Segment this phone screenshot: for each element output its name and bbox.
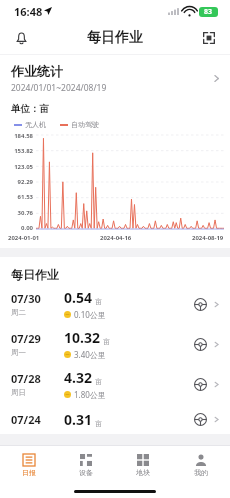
staticText: 0.31 xyxy=(64,410,92,429)
staticText: 10.32 xyxy=(64,328,100,347)
staticText: 地块 xyxy=(136,468,150,477)
staticText: 每日作业 xyxy=(11,267,59,282)
button[interactable]: 我的 xyxy=(172,446,230,484)
staticText: 亩 xyxy=(95,377,102,386)
button[interactable]: Auto driving xyxy=(193,337,208,352)
staticText: 作业统计 xyxy=(11,63,63,79)
staticText: 日报 xyxy=(22,468,36,477)
button[interactable]: Notifications xyxy=(8,25,34,51)
staticText: 周二 xyxy=(11,308,26,317)
staticText: 30.76 xyxy=(0,209,33,217)
staticText: 123.05 xyxy=(0,163,33,171)
staticText: 0.00 xyxy=(0,224,33,232)
staticText: 4.32 xyxy=(64,368,92,387)
staticText: 83 xyxy=(204,7,213,17)
staticText: 07/28 xyxy=(11,371,41,386)
button[interactable]: Auto driving xyxy=(193,412,208,427)
button[interactable]: 作业统计 xyxy=(0,55,230,98)
staticText: 0.54 xyxy=(64,288,92,307)
staticText: 16:48 xyxy=(14,4,43,19)
staticText: 我的 xyxy=(194,468,208,477)
staticText: 亩 xyxy=(103,337,110,346)
button[interactable]: Scan xyxy=(196,25,222,51)
staticText: 单位：亩 xyxy=(11,103,49,115)
staticText: 周一 xyxy=(11,348,26,357)
staticText: 2024-01-01 xyxy=(8,234,40,242)
button[interactable]: Auto driving xyxy=(193,297,208,312)
staticText: 自动驾驶 xyxy=(71,120,99,129)
button[interactable]: 07/28 xyxy=(0,364,230,404)
button[interactable]: 07/29 xyxy=(0,324,230,364)
staticText: 92.29 xyxy=(0,178,33,186)
staticText: 07/24 xyxy=(11,412,41,427)
button[interactable]: Auto driving xyxy=(193,377,208,392)
button[interactable]: 日报 xyxy=(0,446,57,484)
staticText: 153.82 xyxy=(0,147,33,155)
staticText: 61.53 xyxy=(0,193,33,201)
button[interactable]: 设备 xyxy=(57,446,114,484)
staticText: 无人机 xyxy=(25,120,46,129)
button[interactable]: 地块 xyxy=(114,446,172,484)
staticText: 每日作业 xyxy=(87,29,143,47)
staticText: 07/30 xyxy=(11,291,41,306)
staticText: 周日 xyxy=(11,388,26,397)
staticText: 3.40公里 xyxy=(74,349,106,360)
button[interactable]: 07/24 xyxy=(0,404,230,434)
button[interactable]: 07/30 xyxy=(0,284,230,324)
staticText: 2024-08-19 xyxy=(192,234,224,242)
staticText: 2024/01/01~2024/08/19 xyxy=(11,82,107,94)
staticText: 0.10公里 xyxy=(74,309,106,320)
staticText: 设备 xyxy=(79,468,93,477)
staticText: 184.58 xyxy=(0,132,33,140)
staticText: 2024-04-16 xyxy=(100,234,132,242)
staticText: 07/29 xyxy=(11,331,41,346)
staticText: 亩 xyxy=(95,419,102,428)
staticText: 1.80公里 xyxy=(74,389,106,400)
staticText: 亩 xyxy=(95,297,102,306)
